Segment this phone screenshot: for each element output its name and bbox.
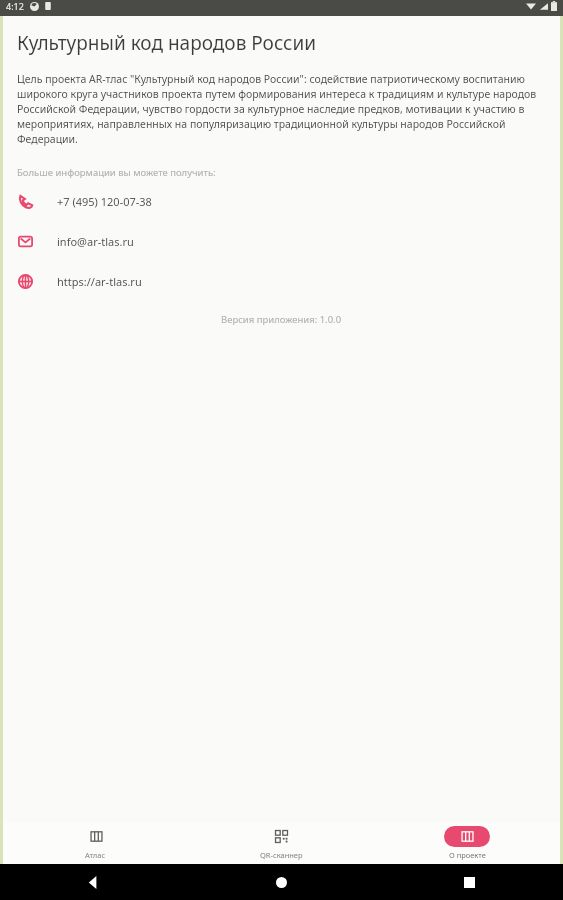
staticText: Цель проекта AR-тлас "Культурный код нар… [17, 72, 546, 146]
staticText: Больше информации вы можете получить: [17, 166, 216, 179]
button[interactable]: Send email [17, 233, 546, 249]
button[interactable]: Recents [375, 877, 563, 888]
button[interactable]: Call phone [17, 193, 546, 209]
staticText: О проекте [449, 850, 486, 860]
staticText: info@ar-tlas.ru [57, 234, 134, 249]
button[interactable]: Атлас [3, 823, 188, 863]
staticText: Версия приложения: 1.0.0 [221, 313, 342, 326]
staticText: Атлас [85, 850, 106, 860]
staticText: Культурный код народов России [17, 30, 317, 56]
staticText: 4:12 [6, 0, 24, 12]
staticText: QR-сканнер [260, 850, 303, 860]
button[interactable]: О проекте [374, 823, 560, 863]
staticText: +7 (495) 120-07-38 [57, 194, 152, 209]
button[interactable]: Home [187, 877, 375, 888]
button[interactable]: Back [0, 876, 187, 889]
button[interactable]: Open website [17, 273, 546, 289]
button[interactable]: QR-сканнер [188, 823, 374, 863]
staticText: https://ar-tlas.ru [57, 274, 142, 289]
